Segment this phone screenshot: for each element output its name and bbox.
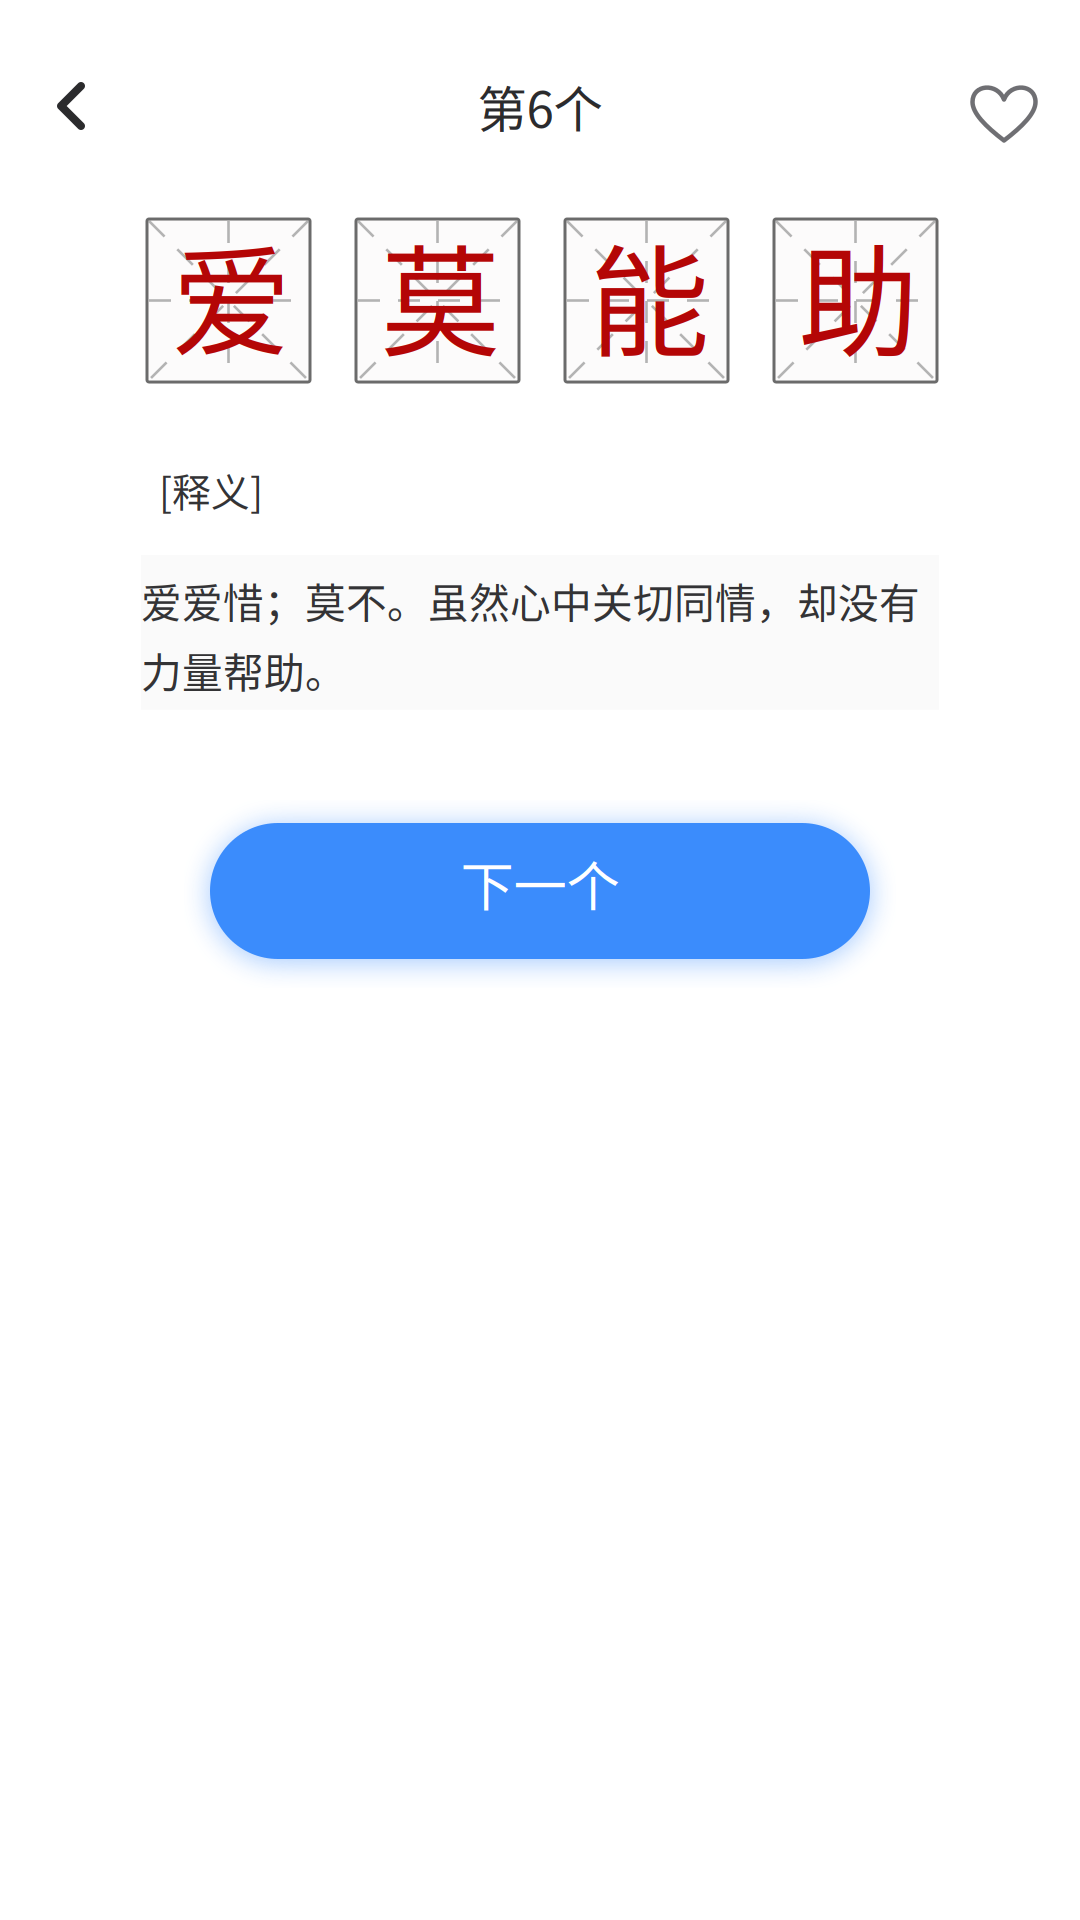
staticText: 第6个 xyxy=(477,70,602,142)
staticText: 爱 xyxy=(171,208,291,381)
staticText: 爱爱惜；莫不。虽然心中关切同情，却没有力量帮助。 xyxy=(141,571,920,700)
staticText: 能 xyxy=(589,208,709,381)
staticText: [释义] xyxy=(159,462,263,518)
staticText: 莫 xyxy=(380,208,500,381)
button[interactable]: Favorite xyxy=(946,55,1062,171)
button[interactable]: Back xyxy=(13,48,129,164)
staticText: 助 xyxy=(798,208,918,381)
staticText: 下一个 xyxy=(460,844,619,922)
button[interactable]: 下一个 xyxy=(210,823,870,959)
